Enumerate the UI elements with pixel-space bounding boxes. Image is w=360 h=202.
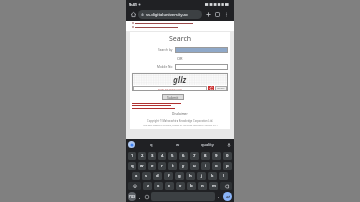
button[interactable]: w: [164, 142, 191, 147]
button[interactable]: More options: [222, 10, 231, 19]
staticText: m: [212, 183, 216, 189]
button[interactable]: 5: [168, 152, 177, 160]
button[interactable]: Emoji: [144, 192, 149, 201]
button[interactable]: 6: [179, 152, 188, 160]
staticText: b: [190, 183, 193, 189]
button[interactable]: .: [217, 192, 221, 201]
button[interactable]: 2: [138, 152, 146, 160]
staticText: 8: [204, 153, 207, 159]
staticText: w: [176, 142, 180, 147]
staticText: .: [218, 194, 220, 199]
staticText: Site best viewed in Chrome, Firefox at 1…: [143, 124, 218, 127]
button[interactable]: d: [153, 172, 162, 180]
staticText: q: [150, 142, 153, 147]
button[interactable]: Enter: [223, 192, 232, 201]
button[interactable]: Home: [129, 10, 138, 19]
staticText: 3: [151, 153, 154, 159]
staticText: n: [201, 183, 204, 189]
staticText: refresh: [217, 87, 225, 90]
button[interactable]: g: [175, 172, 184, 180]
button[interactable]: x: [154, 182, 163, 190]
button[interactable]: ?123: [128, 192, 136, 201]
button[interactable]: h: [186, 172, 195, 180]
staticText: t: [172, 163, 174, 169]
staticText: ?123: [129, 195, 136, 199]
button[interactable]: s: [142, 172, 151, 180]
staticText: z: [147, 183, 149, 189]
staticText: 0: [226, 153, 229, 159]
button[interactable]: f: [164, 172, 173, 180]
button[interactable]: i: [201, 162, 210, 170]
button[interactable]: u: [190, 162, 199, 170]
button[interactable]: quality: [191, 142, 223, 147]
button[interactable]: 1: [128, 152, 136, 160]
staticText: u: [193, 163, 196, 169]
button[interactable]: c: [165, 182, 174, 190]
staticText: quality: [201, 142, 214, 147]
button[interactable]: 8: [201, 152, 210, 160]
button[interactable]: Switch tabs: [213, 10, 222, 19]
staticText: 1: [131, 153, 134, 159]
staticText: j: [201, 173, 203, 179]
staticText: Search by: [158, 48, 173, 52]
button[interactable]: 3: [148, 152, 156, 160]
staticText: k: [211, 173, 214, 179]
staticText: y: [182, 163, 185, 169]
button[interactable]: r: [158, 162, 166, 170]
button[interactable]: j: [197, 172, 206, 180]
button[interactable]: refresh: [215, 86, 227, 91]
staticText: x: [157, 183, 160, 189]
button[interactable]: [175, 64, 228, 70]
button[interactable]: 9: [212, 152, 221, 160]
button[interactable]: Backspace: [220, 182, 232, 190]
button[interactable]: o: [212, 162, 221, 170]
staticText: i: [205, 163, 207, 169]
button[interactable]: v: [176, 182, 185, 190]
button[interactable]: Voice input: [225, 141, 232, 148]
staticText: ,: [139, 194, 141, 199]
button[interactable]: ,: [138, 192, 142, 201]
button[interactable]: New tab: [204, 10, 213, 19]
staticText: OR: [177, 56, 183, 61]
staticText: a: [135, 173, 138, 179]
staticText: Enter the above code: [158, 87, 182, 90]
staticText: Disclaimer: [172, 112, 188, 116]
staticText: g: [178, 173, 181, 179]
button[interactable]: q: [138, 142, 164, 147]
staticText: 6: [182, 153, 185, 159]
button[interactable]: p: [223, 162, 232, 170]
button[interactable]: Enter the above code: [133, 86, 207, 91]
button[interactable]: 0: [223, 152, 232, 160]
staticText: l: [223, 173, 225, 179]
staticText: f: [168, 173, 170, 179]
button[interactable]: b: [187, 182, 196, 190]
button[interactable]: [175, 47, 228, 53]
button[interactable]: ss.digitaluniversity.ac: [138, 10, 202, 19]
button[interactable]: 7: [190, 152, 199, 160]
button[interactable]: w: [138, 162, 146, 170]
button[interactable]: y: [179, 162, 188, 170]
staticText: 9:41: [129, 2, 137, 7]
staticText: w: [140, 163, 144, 169]
button[interactable]: n: [198, 182, 207, 190]
button[interactable]: Shift: [128, 182, 141, 190]
button[interactable]: 4: [158, 152, 166, 160]
staticText: Search: [169, 34, 192, 44]
button[interactable]: m: [209, 182, 218, 190]
button[interactable]: Submit: [162, 94, 184, 100]
button[interactable]: Google Assistant: [128, 141, 135, 148]
button[interactable]: k: [208, 172, 217, 180]
staticText: Mobile No: [157, 65, 173, 69]
button[interactable]: a: [132, 172, 140, 180]
button[interactable]: Refresh captcha: [208, 86, 214, 91]
button[interactable]: l: [219, 172, 228, 180]
staticText: o: [215, 163, 218, 169]
button[interactable]: e: [148, 162, 156, 170]
staticText: 5: [171, 153, 174, 159]
button[interactable]: q: [128, 162, 136, 170]
button[interactable]: z: [143, 182, 152, 190]
staticText: h: [189, 173, 192, 179]
staticText: e: [151, 163, 154, 169]
button[interactable]: t: [168, 162, 177, 170]
